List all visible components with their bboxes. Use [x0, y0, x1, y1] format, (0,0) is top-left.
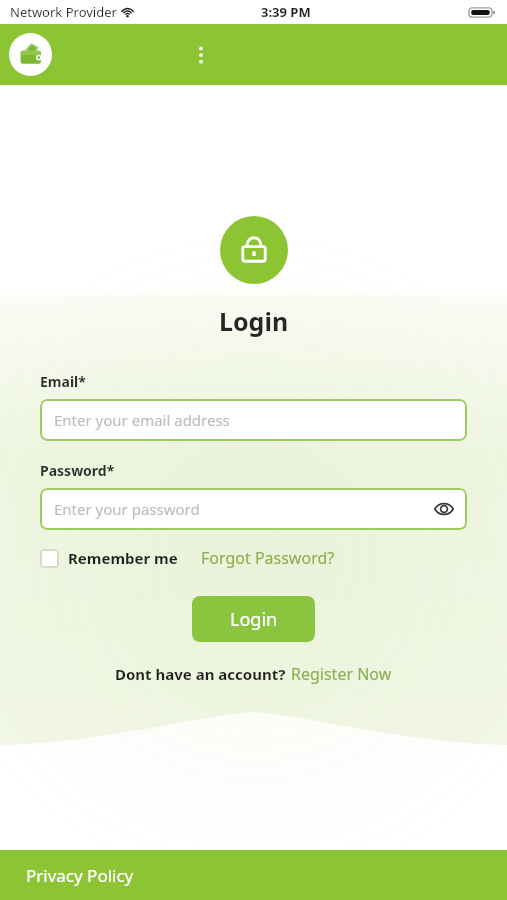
- staticText: Network Provider: [10, 3, 117, 21]
- button[interactable]: Forgot Password?: [201, 547, 335, 569]
- staticText: Enter your password: [54, 499, 200, 519]
- staticText: Login: [230, 607, 278, 632]
- button[interactable]: Show password: [429, 494, 459, 524]
- staticText: Enter your email address: [54, 410, 230, 430]
- button[interactable]: Remember me: [40, 548, 178, 568]
- staticText: Email*: [40, 372, 86, 391]
- staticText: Password*: [40, 461, 115, 480]
- staticText: Remember me: [68, 548, 178, 568]
- staticText: Privacy Policy: [26, 864, 134, 887]
- button[interactable]: Enter your email address: [40, 399, 467, 441]
- staticText: Login: [219, 304, 289, 338]
- button[interactable]: Enter your password: [40, 488, 467, 530]
- staticText: 3:39 PM: [261, 3, 311, 21]
- button[interactable]: Login: [192, 596, 315, 642]
- staticText: Forgot Password?: [201, 547, 335, 569]
- button[interactable]: App logo: [9, 33, 52, 76]
- staticText: Dont have an account?: [115, 664, 286, 684]
- button[interactable]: More options: [182, 36, 220, 74]
- staticText: Register Now: [291, 663, 392, 685]
- button[interactable]: Privacy Policy: [0, 850, 507, 900]
- button[interactable]: Register Now: [291, 663, 392, 685]
